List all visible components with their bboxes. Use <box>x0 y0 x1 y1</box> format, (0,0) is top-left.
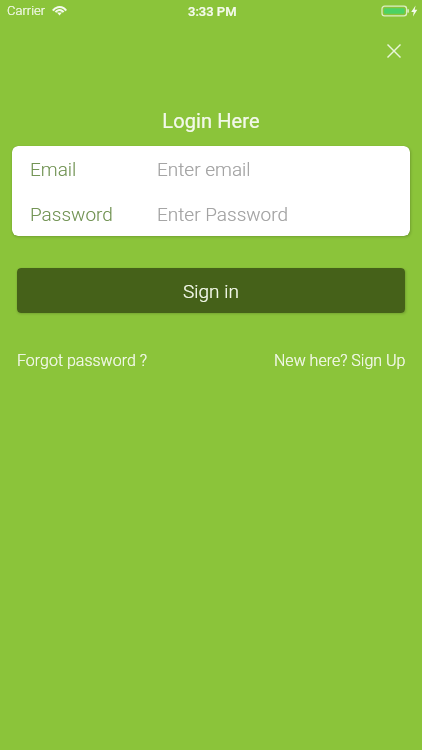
staticText: Login Here <box>0 109 422 132</box>
button[interactable]: Password <box>12 191 410 236</box>
staticText: Password <box>30 203 113 225</box>
button[interactable]: Close <box>378 35 410 67</box>
button[interactable]: Email <box>12 146 410 191</box>
staticText: Enter Password <box>157 203 289 225</box>
staticText: Email <box>30 158 77 180</box>
staticText: Enter email <box>157 158 251 180</box>
button[interactable]: Forgot password ? <box>17 351 147 370</box>
staticText: 3:33 PM <box>188 4 237 19</box>
staticText: Forgot password ? <box>17 351 147 370</box>
button[interactable]: New here? Sign Up <box>274 351 406 370</box>
staticText: Carrier <box>7 3 46 18</box>
staticText: Sign in <box>183 280 239 302</box>
staticText: New here? Sign Up <box>274 351 406 370</box>
button[interactable]: Sign in <box>17 268 405 313</box>
